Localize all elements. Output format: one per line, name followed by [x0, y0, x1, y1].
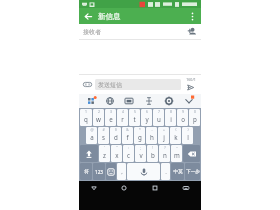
button[interactable]: ,	[117, 163, 126, 180]
button[interactable]: Recents	[139, 181, 170, 194]
button[interactable]: 3	[105, 109, 116, 126]
staticText: 发送短信	[98, 81, 122, 89]
staticText: "	[116, 145, 118, 150]
button[interactable]: 符	[80, 163, 92, 180]
staticText: k	[174, 133, 178, 141]
button[interactable]: Back	[79, 181, 109, 194]
button[interactable]: Send	[183, 75, 198, 94]
button[interactable]: 2	[93, 109, 104, 126]
staticText: q	[84, 115, 88, 123]
staticText: j	[163, 133, 165, 141]
button[interactable]: Backspace	[183, 145, 200, 162]
button[interactable]: &	[122, 127, 133, 144]
button[interactable]: Clipboard	[119, 94, 139, 108]
staticText: 3	[110, 109, 112, 114]
staticText: #	[102, 127, 105, 132]
button[interactable]: )	[182, 127, 193, 144]
staticText: b	[151, 151, 155, 159]
button[interactable]: Move cursor	[139, 94, 159, 108]
staticText: 新信息	[98, 12, 121, 21]
button[interactable]: Space	[127, 163, 160, 180]
button[interactable]: 0	[189, 109, 200, 126]
staticText: ?	[164, 145, 166, 150]
button[interactable]: Add recipient	[186, 26, 197, 37]
staticText: u	[157, 115, 161, 123]
button[interactable]: ?	[159, 145, 170, 162]
staticText: d	[114, 133, 118, 141]
staticText: -	[151, 127, 153, 132]
staticText: ;	[140, 145, 141, 150]
staticText: s	[102, 133, 105, 141]
staticText: y	[145, 115, 149, 123]
staticText: z	[103, 151, 106, 159]
staticText: 下一步	[186, 169, 200, 175]
button[interactable]: 8	[165, 109, 176, 126]
staticText: v	[139, 151, 143, 159]
button[interactable]: Hide keyboard	[170, 181, 201, 194]
staticText: e	[109, 115, 113, 123]
button[interactable]: .	[161, 163, 170, 180]
button[interactable]: "	[111, 145, 122, 162]
button[interactable]: 9	[177, 109, 188, 126]
button[interactable]: Keyboard themes	[81, 94, 100, 108]
button[interactable]: Back	[82, 10, 95, 23]
staticText: @	[90, 127, 94, 132]
button[interactable]: 7	[153, 109, 164, 126]
staticText: 1	[85, 109, 87, 114]
staticText: h	[150, 133, 154, 141]
staticText: 8	[170, 109, 172, 114]
button[interactable]: $	[110, 127, 121, 144]
staticText: a	[90, 133, 94, 141]
staticText: .	[165, 168, 167, 176]
button[interactable]: ~	[171, 145, 182, 162]
button[interactable]: Emoji	[106, 163, 116, 180]
staticText: $	[115, 127, 117, 132]
staticText: n	[163, 151, 167, 159]
staticText: 123	[95, 169, 103, 175]
button[interactable]: 6	[141, 109, 152, 126]
button[interactable]: Settings	[159, 94, 179, 108]
button[interactable]: @	[86, 127, 97, 144]
staticText: )	[187, 127, 189, 132]
button[interactable]: 4	[117, 109, 128, 126]
button[interactable]: (	[170, 127, 181, 144]
staticText: g	[138, 133, 142, 141]
staticText: 6	[146, 109, 148, 114]
button[interactable]: !	[147, 145, 158, 162]
staticText: 2	[98, 109, 100, 114]
staticText: 5	[134, 109, 136, 114]
staticText: 0	[194, 109, 196, 114]
button[interactable]: Language	[100, 94, 119, 108]
button[interactable]: More options	[187, 11, 198, 22]
staticText: t	[133, 115, 136, 123]
staticText: (	[175, 127, 177, 132]
button[interactable]: Shift	[80, 145, 98, 162]
button[interactable]: 1	[80, 109, 92, 126]
button[interactable]: -	[146, 127, 157, 144]
staticText: m	[174, 151, 180, 159]
button[interactable]: '	[99, 145, 110, 162]
button[interactable]: 下一步	[185, 163, 200, 180]
button[interactable]: *	[134, 127, 145, 144]
button[interactable]: +	[158, 127, 169, 144]
staticText: w	[96, 115, 101, 123]
button[interactable]: Home	[109, 181, 139, 194]
staticText: 中英	[173, 169, 183, 175]
button[interactable]: :	[123, 145, 134, 162]
button[interactable]: Attach	[82, 79, 93, 90]
staticText: *	[139, 127, 141, 132]
button[interactable]: ;	[135, 145, 146, 162]
staticText: 接收者	[83, 28, 101, 36]
staticText: :	[128, 145, 129, 150]
staticText: l	[187, 133, 189, 141]
button[interactable]: 中英	[171, 163, 184, 180]
staticText: x	[115, 151, 119, 159]
button[interactable]: Hide toolbar	[179, 94, 199, 108]
staticText: ~	[176, 145, 178, 150]
button[interactable]: #	[98, 127, 109, 144]
staticText: !	[152, 145, 153, 150]
button[interactable]: 5	[129, 109, 140, 126]
button[interactable]: 123	[93, 163, 105, 180]
staticText: 9	[182, 109, 184, 114]
button[interactable]: 发送短信	[95, 79, 181, 90]
